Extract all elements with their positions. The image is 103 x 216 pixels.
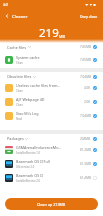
staticText: 7.04MB xyxy=(80,114,91,118)
staticText: Read xyxy=(16,117,23,121)
staticText: Deep clean xyxy=(80,14,98,18)
button[interactable]: Basemark OS II Full xyxy=(0,157,103,171)
button[interactable]: Xiao Mi's Log xyxy=(0,109,103,123)
button[interactable]: Deep clean xyxy=(78,12,100,20)
staticText: 4:41 xyxy=(3,3,9,7)
button[interactable]: Clean up 213MB xyxy=(5,198,98,210)
staticText: 61.4MB xyxy=(80,176,91,180)
button[interactable]: System cache xyxy=(0,53,103,67)
staticText: Cleaner xyxy=(12,13,28,19)
staticText: 204MB xyxy=(80,137,91,141)
staticText: MB xyxy=(59,34,65,39)
staticText: 4.0K xyxy=(84,86,91,90)
staticText: GSMArenaEnduranceMo... xyxy=(16,145,62,150)
button[interactable]: GSMArenaEnduranceMo... xyxy=(0,143,103,157)
staticText: Clean xyxy=(16,61,23,65)
staticText: 219 xyxy=(39,25,59,41)
staticText: 7.04MB xyxy=(80,75,91,79)
staticText: Useless cache files from... xyxy=(16,83,61,88)
staticText: Basemark OS II Full xyxy=(16,159,50,164)
staticText: 61.3MB xyxy=(80,162,91,166)
staticText: 7.65MB xyxy=(80,45,91,49)
staticText: 81.2MB xyxy=(80,148,91,152)
staticText: Basemark OS II xyxy=(16,173,43,178)
staticText: Clean up 213MB xyxy=(37,202,66,207)
button[interactable]: Basemark OS II xyxy=(0,171,103,185)
staticText: Packages xyxy=(7,136,24,141)
staticText: Obsolete files xyxy=(7,74,32,79)
staticText: Xiao Mi's Log xyxy=(16,111,39,116)
staticText: AJF Webpage 4D xyxy=(16,97,45,102)
staticText: InstalledVersion 2.0 xyxy=(16,179,40,183)
button[interactable]: Cache files xyxy=(0,43,103,51)
staticText: System cache xyxy=(16,55,40,60)
staticText: 7.65MB xyxy=(80,58,91,62)
staticText: InstalledVersion 1.0 xyxy=(16,151,40,155)
button[interactable]: Packages xyxy=(0,134,103,143)
staticText: Clean xyxy=(16,89,23,93)
staticText: 2.0K xyxy=(84,100,91,104)
button[interactable]: AJF Webpage 4D xyxy=(0,95,103,109)
button[interactable]: Useless cache files from... xyxy=(0,81,103,95)
button[interactable]: Obsolete files xyxy=(0,72,103,81)
button[interactable]: Back xyxy=(3,12,11,20)
staticText: Clean xyxy=(16,103,23,107)
staticText: Cache files xyxy=(7,45,27,50)
staticText: Old version 2.0 xyxy=(16,165,35,169)
